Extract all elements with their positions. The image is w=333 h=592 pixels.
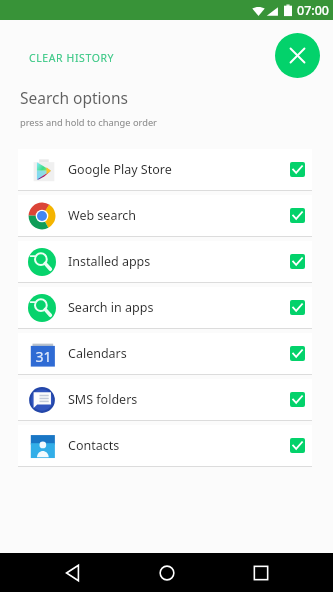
staticText: Calendars <box>68 345 127 362</box>
button[interactable]: Home <box>138 553 196 592</box>
staticText: 07:00 <box>297 2 330 19</box>
staticText: Search in apps <box>68 299 154 316</box>
button[interactable]: Search in apps <box>18 287 312 328</box>
button[interactable]: Toggle option <box>290 392 305 407</box>
staticText: SMS folders <box>68 391 138 408</box>
button[interactable]: Google Play Store <box>18 149 312 190</box>
button[interactable]: Contacts <box>18 425 312 466</box>
button[interactable]: 31 <box>18 333 312 374</box>
staticText: press and hold to change order <box>20 116 157 129</box>
staticText: Google Play Store <box>68 161 172 178</box>
staticText: CLEAR HISTORY <box>29 51 115 65</box>
button[interactable]: Toggle option <box>290 346 305 361</box>
button[interactable]: Toggle option <box>290 162 305 177</box>
button[interactable]: Close <box>275 33 320 78</box>
button[interactable]: Toggle option <box>290 208 305 223</box>
staticText: Installed apps <box>68 253 151 270</box>
button[interactable]: Recent apps <box>232 553 290 592</box>
staticText: Contacts <box>68 437 120 454</box>
button[interactable]: Toggle option <box>290 438 305 453</box>
staticText: Search options <box>20 87 128 108</box>
staticText: 31 <box>35 347 52 366</box>
staticText: Web search <box>68 207 137 224</box>
button[interactable]: Installed apps <box>18 241 312 282</box>
button[interactable]: Web search <box>18 195 312 236</box>
button[interactable]: SMS folders <box>18 379 312 420</box>
button[interactable]: CLEAR HISTORY <box>17 42 127 74</box>
button[interactable]: Toggle option <box>290 300 305 315</box>
button[interactable]: Toggle option <box>290 254 305 269</box>
button[interactable]: Back <box>44 553 102 592</box>
